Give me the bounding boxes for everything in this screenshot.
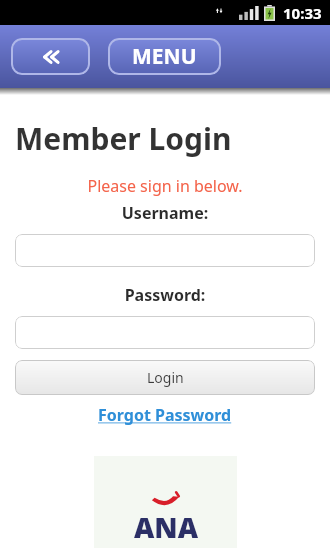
button[interactable]: Forgot Password <box>0 404 330 426</box>
staticText: ANA <box>134 508 199 546</box>
button[interactable]: Back <box>11 38 90 75</box>
button[interactable]: Login <box>15 360 315 395</box>
button[interactable]: MENU <box>108 38 221 75</box>
staticText: 10:33 <box>283 3 322 23</box>
staticText: Login <box>147 368 184 387</box>
staticText: Forgot Password <box>98 404 232 426</box>
button[interactable] <box>15 316 315 349</box>
staticText: MENU <box>132 42 197 71</box>
button[interactable] <box>15 234 315 267</box>
staticText: Member Login <box>15 118 232 159</box>
staticText: Username: <box>0 202 330 224</box>
staticText: Password: <box>0 284 330 306</box>
staticText: MICHIGAN <box>96 546 236 550</box>
staticText: Please sign in below. <box>0 175 330 197</box>
